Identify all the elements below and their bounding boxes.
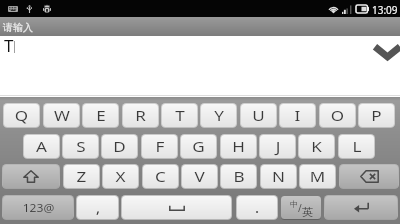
staticText: M — [310, 167, 325, 186]
staticText: Z — [76, 167, 87, 186]
staticText: Y — [214, 106, 224, 125]
staticText: F — [155, 137, 165, 156]
button[interactable] — [3, 165, 59, 188]
staticText: T — [175, 106, 185, 125]
staticText: R — [135, 106, 146, 125]
button[interactable]: Expand — [368, 41, 400, 63]
button[interactable]: B — [221, 165, 256, 188]
staticText: 请输入 — [3, 21, 33, 34]
staticText: 123@ — [22, 200, 54, 215]
button[interactable]: Z — [64, 165, 99, 188]
button[interactable]: G — [181, 135, 216, 158]
button[interactable]: Q — [4, 104, 39, 127]
staticText: I — [294, 106, 301, 125]
button[interactable]: A — [24, 135, 59, 158]
button[interactable]: Y — [201, 104, 236, 127]
staticText: D — [113, 137, 126, 156]
staticText: O — [331, 106, 344, 125]
button[interactable] — [122, 196, 231, 219]
button[interactable]: 123@ — [3, 196, 73, 219]
button[interactable]: L — [339, 135, 374, 158]
button[interactable]: O — [320, 104, 355, 127]
button[interactable]: K — [299, 135, 334, 158]
button[interactable]: R — [123, 104, 158, 127]
staticText: H — [232, 137, 245, 156]
button[interactable]: , — [77, 196, 118, 219]
button[interactable] — [325, 196, 397, 219]
staticText: U — [252, 106, 265, 125]
staticText: A — [36, 137, 47, 156]
button[interactable]: C — [143, 165, 178, 188]
staticText: B — [233, 167, 245, 186]
button[interactable]: S — [63, 135, 98, 158]
staticText: C — [155, 167, 166, 186]
staticText: Q — [15, 106, 28, 125]
staticText: 英 — [302, 205, 313, 219]
staticText: 中 — [290, 199, 298, 209]
button[interactable]: Switch language — [281, 196, 321, 219]
staticText: V — [194, 167, 205, 186]
staticText: S — [76, 137, 86, 156]
staticText: 13:09 — [372, 3, 398, 17]
button[interactable]: N — [261, 165, 296, 188]
button[interactable] — [340, 165, 398, 188]
button[interactable]: E — [83, 104, 118, 127]
button[interactable]: T — [162, 104, 197, 127]
button[interactable]: J — [260, 135, 295, 158]
button[interactable]: W — [44, 104, 79, 127]
button[interactable]: I — [280, 104, 315, 127]
button[interactable]: M — [300, 165, 335, 188]
staticText: W — [53, 106, 71, 125]
staticText: J — [276, 137, 280, 156]
staticText: G — [192, 137, 205, 156]
button[interactable]: V — [182, 165, 217, 188]
button[interactable]: D — [102, 135, 137, 158]
button[interactable]: X — [103, 165, 138, 188]
button[interactable]: F — [142, 135, 177, 158]
staticText: L — [352, 137, 362, 156]
button[interactable]: U — [241, 104, 276, 127]
staticText: E — [96, 106, 106, 125]
staticText: X — [115, 167, 126, 186]
button[interactable]: . — [237, 196, 277, 219]
staticText: N — [272, 167, 285, 186]
button[interactable]: H — [221, 135, 256, 158]
staticText: T — [4, 34, 14, 57]
button[interactable]: P — [359, 104, 394, 127]
staticText: / — [298, 201, 302, 215]
staticText: P — [371, 106, 382, 125]
staticText: . — [255, 198, 259, 217]
staticText: K — [311, 137, 322, 156]
staticText: , — [96, 198, 100, 217]
